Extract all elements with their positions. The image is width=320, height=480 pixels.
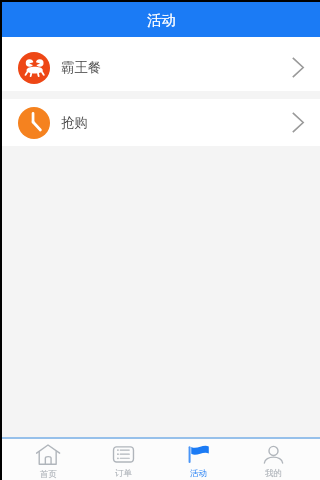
other: Home [36,441,60,465]
staticText: 活动 [190,468,207,479]
staticText: 霸王餐 [61,59,102,76]
button[interactable]: 抢购 [2,99,320,146]
button[interactable]: Orders [86,439,161,480]
button[interactable]: 霸王餐 [2,37,320,91]
staticText: 我的 [265,468,282,479]
staticText: 抢购 [61,114,88,131]
button[interactable]: Profile [236,439,311,480]
staticText: 活动 [147,11,176,29]
other: Activities [188,442,209,463]
staticText: 订单 [115,468,132,479]
other: Profile [263,442,284,463]
other: Orders [113,442,134,463]
button[interactable]: Activities [161,439,236,480]
staticText: 首页 [40,469,57,480]
button[interactable]: Home [10,439,86,480]
